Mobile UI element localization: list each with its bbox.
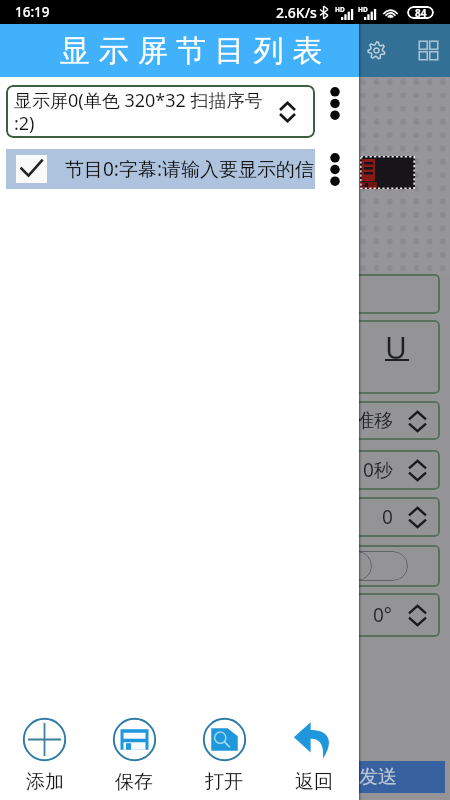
staticText: 0° <box>373 602 393 628</box>
staticText: 显示屏0(单色 320*32 扫描序号 :2) <box>14 88 270 136</box>
staticText: 16:19 <box>15 3 50 21</box>
button[interactable]: 发送 <box>357 761 445 793</box>
staticText: U <box>385 327 407 368</box>
staticText: 节目0:字幕:请输入要显示的信 <box>65 156 315 182</box>
button[interactable]: 保存 <box>89 705 179 800</box>
staticText: HD <box>335 5 345 14</box>
staticText: 准移 <box>355 409 393 433</box>
staticText: 添加 <box>26 770 64 794</box>
button[interactable]: 显示屏0(单色 320*32 扫描序号 :2) <box>8 87 313 136</box>
staticText: 返回 <box>295 770 333 794</box>
staticText: 0 <box>382 504 393 530</box>
button[interactable]: 返回 <box>269 705 359 800</box>
staticText: 显示屏节目列表 <box>60 32 331 70</box>
staticText: 84 <box>415 6 427 19</box>
button[interactable]: 打开 <box>179 705 269 800</box>
staticText: HD <box>358 5 368 14</box>
button[interactable]: More options <box>315 85 358 138</box>
button[interactable]: Item options <box>315 149 358 189</box>
staticText: 2.6K/s <box>276 3 317 22</box>
staticText: 保存 <box>115 770 153 794</box>
button[interactable]: 添加 <box>0 705 89 800</box>
staticText: 打开 <box>205 770 243 794</box>
staticText: 0秒 <box>363 457 393 483</box>
button[interactable]: Settings <box>358 32 394 68</box>
button[interactable]: Apps <box>410 32 446 68</box>
staticText: 发送 <box>359 765 397 789</box>
button[interactable]: 节目0:字幕:请输入要显示的信 <box>6 149 315 189</box>
